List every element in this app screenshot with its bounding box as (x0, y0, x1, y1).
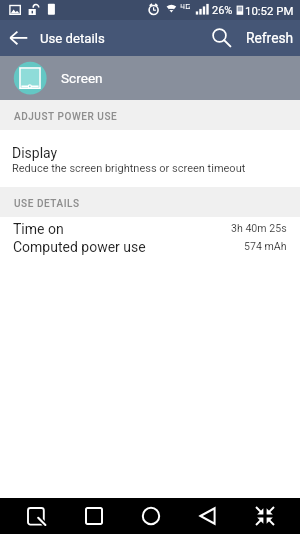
button[interactable]: Computed power use (0, 235, 300, 253)
staticText: Computed power use (13, 239, 146, 255)
staticText: Screen (61, 70, 103, 86)
button[interactable]: Time on (0, 217, 300, 235)
button[interactable]: Refresh (238, 20, 300, 56)
button[interactable]: Back (179, 498, 236, 534)
staticText: 3h 40m 25s (231, 222, 287, 234)
button[interactable]: Recents (65, 498, 122, 534)
staticText: Time on (13, 221, 64, 237)
staticText: Refresh (246, 30, 294, 46)
staticText: Use details (40, 31, 105, 46)
button[interactable]: Search (205, 20, 239, 56)
staticText: 574 mAh (244, 240, 287, 252)
button[interactable]: Screen (0, 56, 300, 100)
staticText: Display (12, 145, 58, 161)
button[interactable]: Screenshot (7, 498, 65, 534)
button[interactable]: Home (122, 498, 179, 534)
button[interactable]: Collapse (236, 498, 293, 534)
button[interactable]: Back (0, 20, 36, 56)
staticText: USE DETAILS (14, 198, 80, 210)
staticText: 26% (212, 4, 233, 17)
staticText: ADJUST POWER USE (14, 111, 118, 123)
staticText: Reduce the screen brightness or screen t… (12, 162, 246, 175)
staticText: 10:52 PM (245, 4, 294, 17)
button[interactable]: Display (0, 130, 300, 187)
